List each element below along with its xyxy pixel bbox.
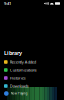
button[interactable]: Downloads: [0, 82, 64, 90]
staticText: Customizations: [10, 67, 37, 73]
button[interactable]: Histories: [0, 74, 64, 82]
staticText: Recently Added: [10, 59, 36, 65]
staticText: 9:41: [4, 1, 11, 6]
button[interactable]: Customizations: [0, 66, 64, 74]
staticText: Histories: [10, 75, 26, 81]
staticText: Library: [4, 49, 22, 57]
staticText: Now Playing: [11, 92, 28, 95]
staticText: Downloads: [10, 83, 29, 89]
button[interactable]: Recently Added: [0, 58, 64, 66]
